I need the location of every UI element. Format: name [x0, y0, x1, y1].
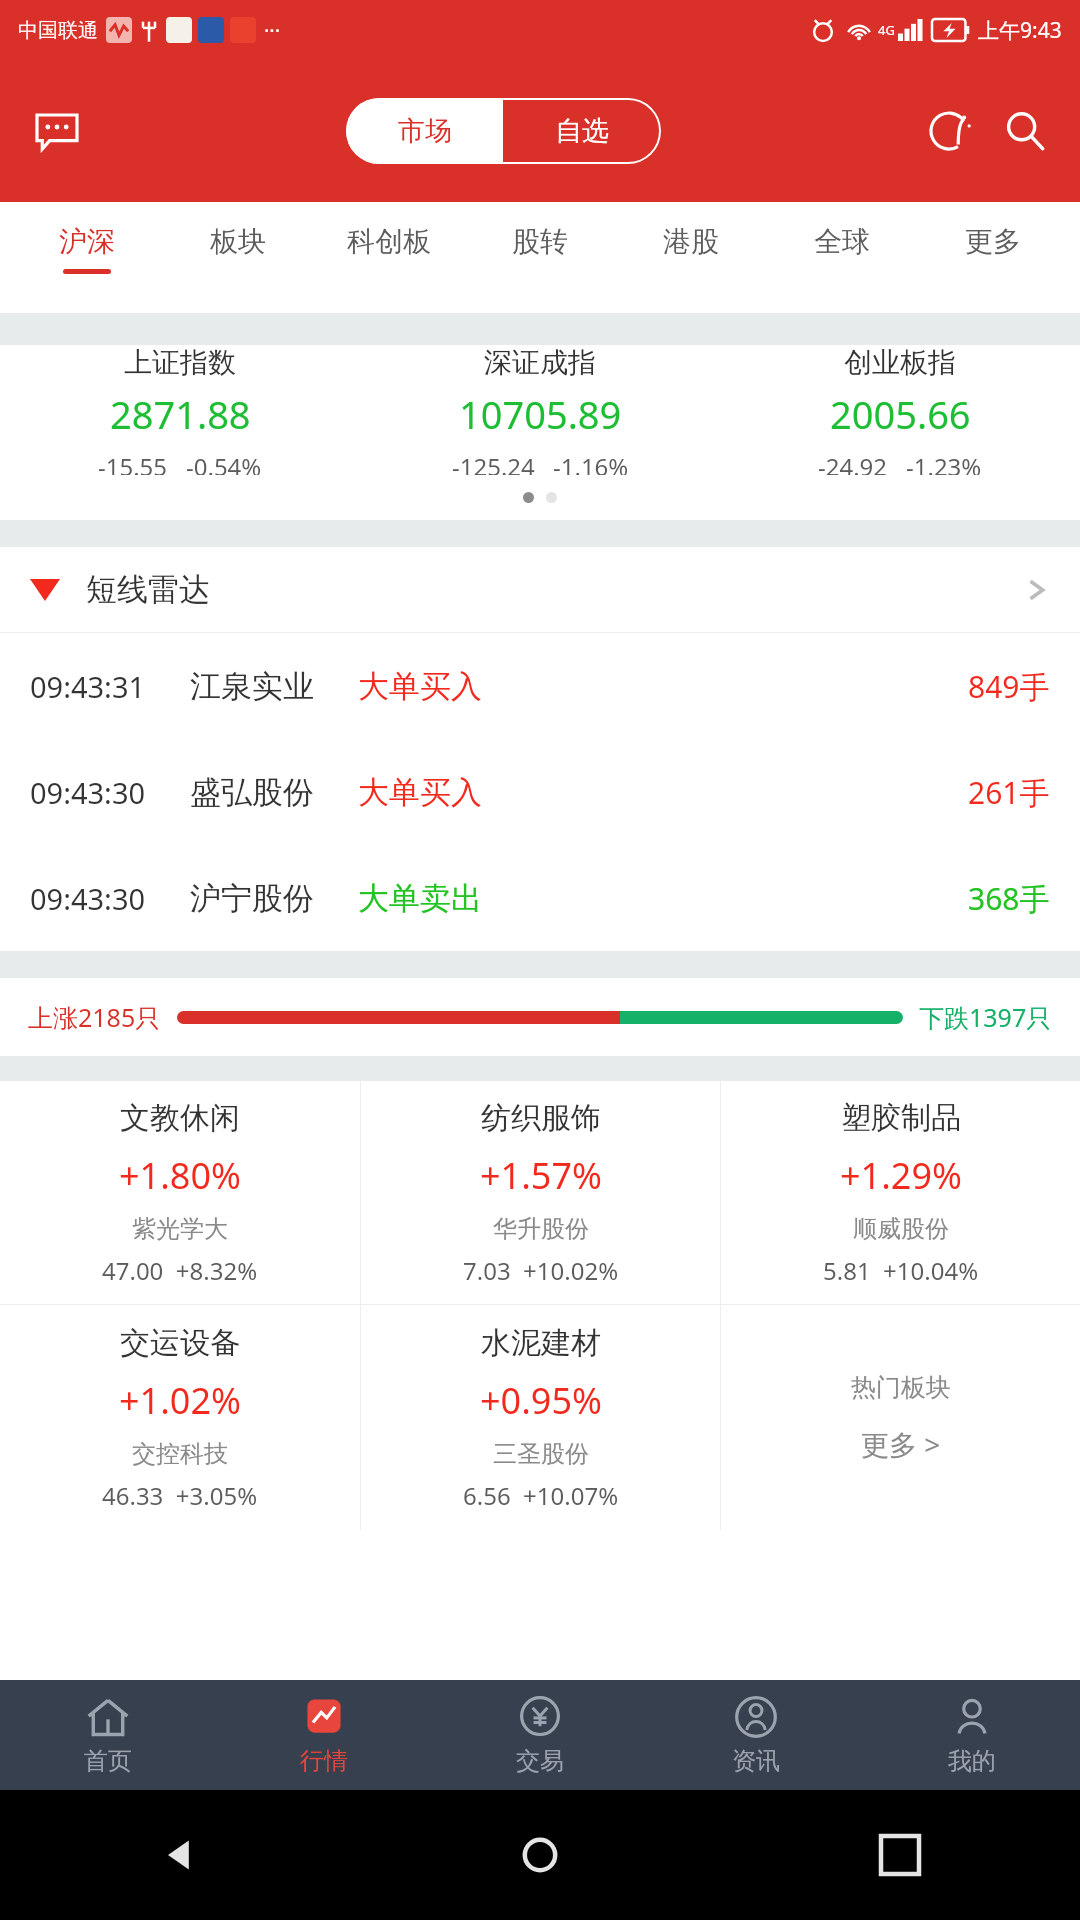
button[interactable]: 我的 — [864, 1680, 1080, 1790]
staticText: 2005.66 — [830, 388, 971, 440]
staticText: 板块 — [210, 224, 266, 259]
staticText: 上午9:43 — [978, 16, 1062, 45]
button[interactable]: 深证成指 — [360, 345, 720, 475]
button[interactable]: 塑胶制品 — [721, 1081, 1080, 1304]
staticText: 09:43:30 — [30, 773, 146, 812]
button[interactable]: 行情 — [216, 1680, 432, 1790]
staticText: 4G — [878, 21, 895, 39]
button[interactable]: 交运设备 — [0, 1305, 360, 1530]
staticText: 下跌1397只 — [919, 1000, 1052, 1034]
staticText: +0.95% — [480, 1376, 602, 1425]
button[interactable]: 科创板 — [313, 202, 464, 313]
staticText: -0.54% — [186, 450, 262, 475]
button[interactable]: 首页 — [0, 1680, 216, 1790]
staticText: 首页 — [84, 1746, 132, 1776]
staticText: 资讯 — [732, 1746, 780, 1776]
staticText: 科创板 — [347, 224, 431, 259]
button[interactable]: 股转 — [464, 202, 615, 313]
staticText: -125.24 — [452, 450, 535, 475]
button[interactable]: 09:43:31 — [0, 633, 1080, 739]
staticText: 深证成指 — [484, 345, 596, 380]
staticText: +1.57% — [480, 1151, 602, 1200]
staticText: 大单卖出 — [358, 879, 482, 918]
button[interactable]: 短线雷达 — [0, 547, 1080, 632]
staticText: +1.02% — [119, 1376, 241, 1425]
staticText: 我的 — [948, 1746, 996, 1776]
button[interactable]: 09:43:30 — [0, 739, 1080, 845]
staticText: 上证指数 — [124, 345, 236, 380]
staticText: 顺威股份 — [853, 1214, 949, 1244]
staticText: 09:43:31 — [30, 667, 146, 706]
staticText: 上涨2185只 — [28, 1000, 161, 1034]
button[interactable]: 市场 — [346, 98, 503, 164]
staticText: 行情 — [300, 1746, 348, 1776]
staticText: 盛弘股份 — [190, 773, 314, 812]
staticText: 热门板块 — [851, 1372, 951, 1403]
staticText: 2871.88 — [110, 388, 251, 440]
staticText: 大单买入 — [358, 773, 482, 812]
staticText: 股转 — [512, 224, 568, 259]
staticText: 10705.89 — [459, 388, 622, 440]
staticText: 更多 — [965, 224, 1021, 259]
staticText: 09:43:30 — [30, 879, 146, 918]
staticText: -24.92 — [818, 450, 888, 475]
button[interactable]: 09:43:30 — [0, 845, 1080, 951]
button[interactable]: Messages — [24, 98, 90, 164]
staticText: 江泉实业 — [190, 667, 314, 706]
staticText: 全球 — [814, 224, 870, 259]
button[interactable]: 上证指数 — [0, 345, 360, 475]
staticText: 849手 — [968, 666, 1050, 707]
button[interactable]: Night mode — [918, 100, 980, 162]
staticText: 交运设备 — [120, 1324, 240, 1362]
staticText: -1.16% — [553, 450, 629, 475]
staticText: 5.81 +10.04% — [823, 1254, 979, 1287]
button[interactable]: 更多 — [917, 202, 1068, 313]
button[interactable]: 创业板指 — [720, 345, 1080, 475]
button[interactable]: 文教休闲 — [0, 1081, 360, 1304]
button[interactable]: 热门板块 — [721, 1305, 1080, 1530]
staticText: 短线雷达 — [86, 570, 210, 609]
staticText: -1.23% — [906, 450, 982, 475]
staticText: 交易 — [516, 1746, 564, 1776]
staticText: 市场 — [398, 114, 452, 148]
button[interactable]: 港股 — [615, 202, 766, 313]
staticText: 368手 — [968, 878, 1050, 919]
staticText: 塑胶制品 — [841, 1099, 961, 1137]
button[interactable]: 沪深 — [12, 202, 162, 313]
button[interactable]: 自选 — [503, 98, 661, 164]
staticText: 261手 — [968, 772, 1050, 813]
button[interactable]: 纺织服饰 — [361, 1081, 720, 1304]
staticText: 文教休闲 — [120, 1099, 240, 1137]
staticText: +1.29% — [840, 1151, 962, 1200]
staticText: 7.03 +10.02% — [463, 1254, 619, 1287]
staticText: 更多 > — [861, 1425, 941, 1463]
staticText: +1.80% — [119, 1151, 241, 1200]
staticText: 6.56 +10.07% — [463, 1479, 619, 1512]
staticText: 46.33 +3.05% — [102, 1479, 258, 1512]
button[interactable]: 全球 — [766, 202, 917, 313]
staticText: 三圣股份 — [493, 1439, 589, 1469]
staticText: 纺织服饰 — [481, 1099, 601, 1137]
staticText: 自选 — [555, 114, 609, 148]
button[interactable]: Search — [994, 100, 1056, 162]
button[interactable]: 交易 — [432, 1680, 648, 1790]
staticText: 中国联通 — [18, 18, 98, 43]
staticText: 大单买入 — [358, 667, 482, 706]
button[interactable]: 水泥建材 — [361, 1305, 720, 1530]
staticText: 华升股份 — [493, 1214, 589, 1244]
staticText: 47.00 +8.32% — [102, 1254, 258, 1287]
staticText: ··· — [264, 17, 281, 44]
staticText: 沪深 — [59, 224, 115, 259]
staticText: 沪宁股份 — [190, 879, 314, 918]
staticText: 交控科技 — [132, 1439, 228, 1469]
staticText: 创业板指 — [844, 345, 956, 380]
staticText: -15.55 — [98, 450, 168, 475]
staticText: 紫光学大 — [132, 1214, 228, 1244]
staticText: 港股 — [663, 224, 719, 259]
button[interactable]: 资讯 — [648, 1680, 864, 1790]
staticText: 水泥建材 — [481, 1324, 601, 1362]
button[interactable]: 板块 — [162, 202, 313, 313]
